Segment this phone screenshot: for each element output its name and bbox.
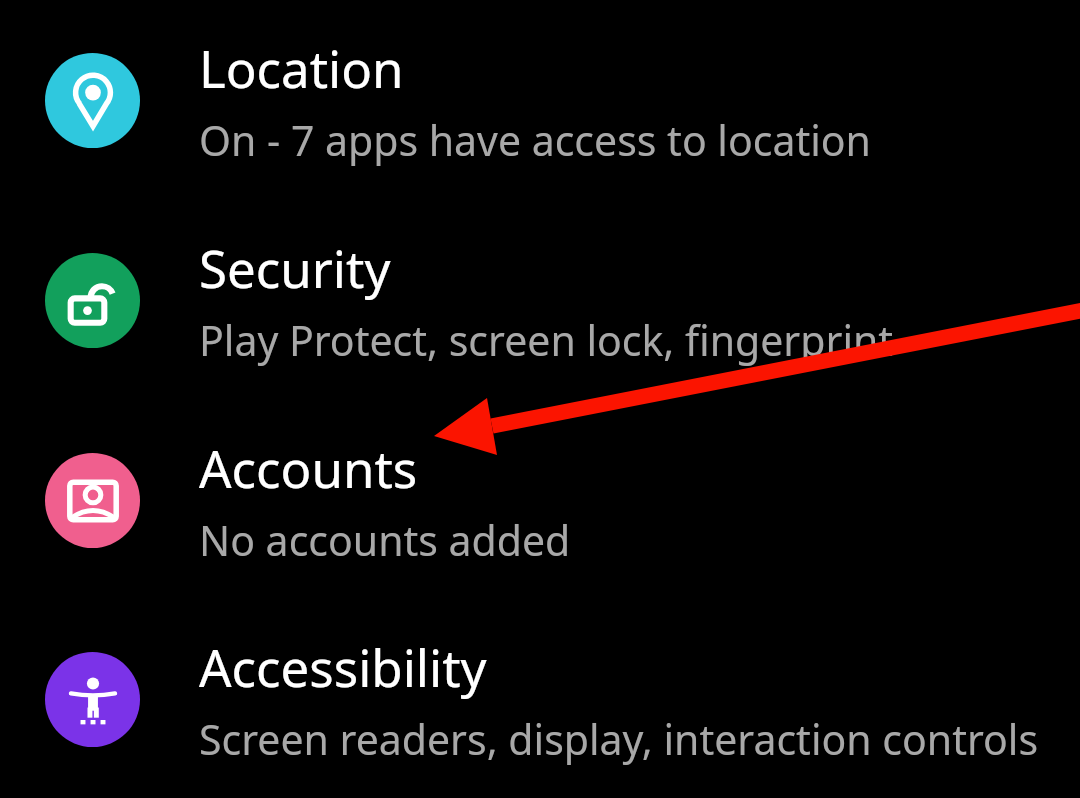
button[interactable]: Accessibility [0,600,1080,798]
staticText: Accessibility [199,632,487,701]
button[interactable]: Location [0,0,1080,200]
staticText: Play Protect, screen lock, fingerprint [199,312,894,368]
other: Accounts [45,453,140,548]
staticText: No accounts added [199,512,571,568]
button[interactable]: Accounts [0,400,1080,600]
other: Accessibility [45,652,140,747]
staticText: Screen readers, display, interaction con… [199,711,1039,767]
button[interactable]: Security [0,200,1080,400]
staticText: Location [199,33,404,102]
staticText: On - 7 apps have access to location [199,112,871,168]
other: Location [45,53,140,148]
other: Security [45,253,140,348]
staticText: Security [199,233,391,302]
staticText: Accounts [199,433,418,502]
